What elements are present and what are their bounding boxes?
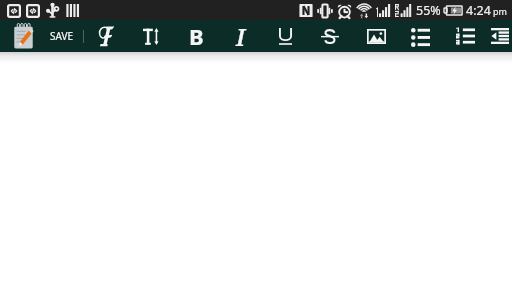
button[interactable]: Numbered list — [448, 20, 482, 52]
button[interactable]: Indent — [483, 20, 512, 52]
button[interactable]: Bold — [179, 20, 213, 52]
staticText: SAVE — [50, 29, 74, 43]
button[interactable]: Strikethrough — [313, 20, 347, 52]
button[interactable]: Font — [89, 20, 123, 52]
button[interactable]: Note — [8, 20, 39, 52]
staticText: I — [236, 21, 245, 52]
staticText: B — [189, 21, 204, 51]
staticText: pm — [493, 5, 507, 17]
button[interactable]: Underline — [268, 20, 302, 52]
button[interactable]: Text size — [134, 20, 168, 52]
button[interactable]: Insert image — [359, 20, 393, 52]
staticText: 4:24 — [466, 2, 491, 19]
button[interactable]: Bullet list — [403, 20, 437, 52]
staticText: 55% — [416, 2, 441, 19]
button[interactable]: SAVE — [44, 20, 79, 52]
button[interactable]: Italic — [223, 20, 257, 52]
